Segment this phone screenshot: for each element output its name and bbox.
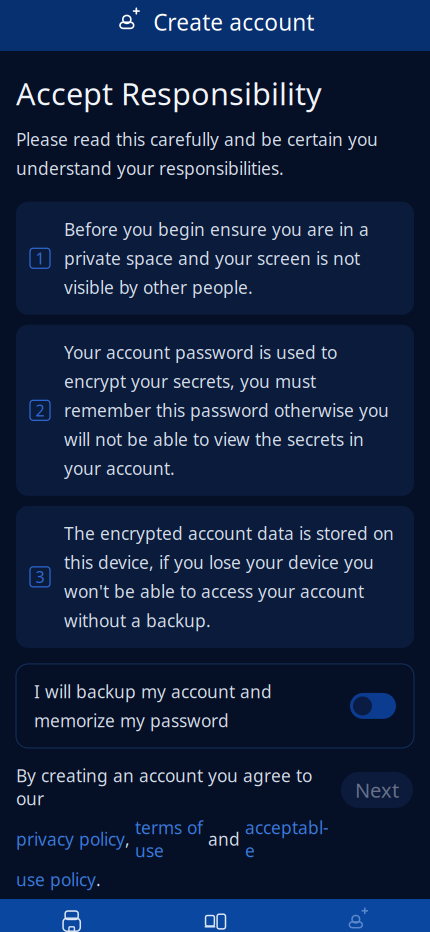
staticText: 2 xyxy=(35,400,44,421)
staticText: 3 xyxy=(35,566,44,587)
button[interactable]: Next xyxy=(341,772,413,808)
staticText: Please read this carefully and be certai… xyxy=(16,128,378,180)
staticText: 1 xyxy=(35,248,44,269)
staticText: use policy xyxy=(16,868,96,891)
staticText: privacy policy xyxy=(16,827,125,850)
button[interactable]: Create account xyxy=(287,900,430,932)
staticText: Your account password is used to encrypt… xyxy=(64,341,389,480)
button[interactable]: Connect xyxy=(143,899,287,932)
button[interactable]: Home xyxy=(0,899,143,932)
staticText: The encrypted account data is stored on … xyxy=(64,522,394,632)
button[interactable]: use policy xyxy=(16,868,96,891)
staticText: . xyxy=(96,868,101,891)
staticText: Accept Responsibility xyxy=(16,73,322,114)
staticText: I will backup my account and memorize my… xyxy=(34,680,272,732)
staticText: By creating an account you agree to our xyxy=(16,764,312,810)
staticText: , xyxy=(125,827,135,850)
button[interactable]: acceptable xyxy=(245,816,329,862)
button[interactable]: I will backup my account and memorize my… xyxy=(16,664,414,748)
staticText: acceptable xyxy=(245,816,329,862)
staticText: Before you begin ensure you are in a pri… xyxy=(64,218,369,299)
staticText: Create account xyxy=(153,7,314,37)
staticText: and xyxy=(203,827,245,850)
staticText: Next xyxy=(355,777,399,803)
button[interactable]: terms of use xyxy=(135,816,203,862)
button[interactable]: privacy policy xyxy=(16,827,125,850)
staticText: terms of use xyxy=(135,816,203,862)
